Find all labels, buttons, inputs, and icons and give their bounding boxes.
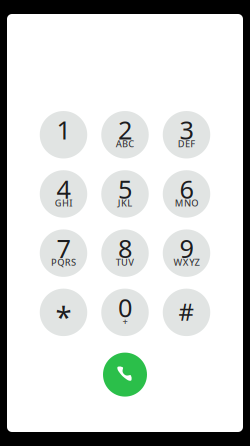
staticText: + (122, 315, 127, 328)
staticText: JKL (118, 197, 132, 209)
staticText: 1 (56, 113, 70, 146)
staticText: 9 (179, 231, 193, 265)
button[interactable]: Call (103, 353, 147, 397)
button[interactable]: 7 (40, 229, 87, 277)
staticText: 7 (56, 231, 70, 265)
staticText: 6 (179, 172, 193, 206)
staticText: 5 (118, 172, 132, 206)
staticText: 4 (56, 172, 70, 206)
staticText: * (55, 297, 71, 336)
button[interactable]: * (40, 289, 87, 336)
button[interactable]: 4 (40, 170, 87, 218)
staticText: ABC (116, 138, 134, 150)
staticText: 0 (118, 290, 132, 324)
button[interactable]: 1 (40, 111, 87, 158)
button[interactable]: 8 (101, 229, 149, 277)
button[interactable]: 0 (101, 289, 149, 336)
button[interactable]: 9 (163, 229, 210, 277)
button[interactable]: # (163, 289, 210, 336)
button[interactable]: 2 (101, 111, 149, 158)
staticText: 3 (179, 113, 193, 146)
button[interactable]: 3 (163, 111, 210, 158)
staticText: DEF (178, 138, 195, 150)
staticText: TUV (116, 256, 134, 268)
staticText: MNO (175, 197, 198, 209)
button[interactable]: 6 (163, 170, 210, 218)
staticText: PQRS (51, 256, 76, 268)
staticText: WXYZ (173, 256, 199, 268)
button[interactable]: 5 (101, 170, 149, 218)
staticText: 8 (118, 231, 132, 265)
staticText: 2 (118, 113, 132, 146)
staticText: # (178, 295, 194, 327)
staticText: GHI (55, 197, 72, 209)
